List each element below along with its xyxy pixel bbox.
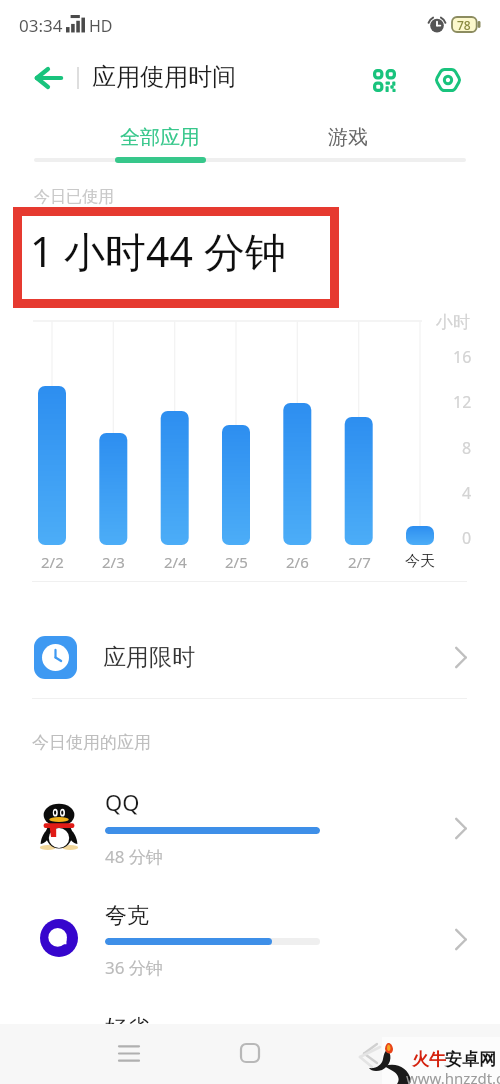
staticText: 2/6 — [286, 552, 309, 572]
staticText: 4 — [462, 482, 472, 500]
staticText: 今日使用的应用 — [32, 732, 151, 753]
button[interactable]: 返回 — [346, 1029, 394, 1077]
staticText: 2/5 — [225, 552, 248, 572]
staticText: 安卓网 — [445, 1049, 496, 1070]
staticText: 全部应用 — [120, 125, 200, 150]
button[interactable]: 游戏 — [248, 120, 448, 154]
button[interactable]: 应用限时 — [0, 599, 500, 715]
staticText: 12 — [453, 391, 472, 409]
staticText: 应用限时 — [103, 643, 195, 672]
button[interactable]: 主屏幕 — [226, 1029, 274, 1077]
staticText: 78 — [457, 17, 471, 33]
staticText: 2/3 — [102, 552, 125, 572]
staticText: 1 小时44 分钟 — [30, 223, 286, 279]
staticText: 2/2 — [41, 552, 64, 572]
staticText: QQ — [105, 787, 140, 817]
button[interactable]: 夸克 — [0, 884, 500, 996]
staticText: HD — [89, 15, 113, 37]
staticText: www.hnzzdt.com — [406, 1068, 500, 1084]
staticText: 好省 — [105, 1014, 149, 1042]
staticText: 小时 — [436, 312, 470, 333]
button[interactable]: 最近任务 — [105, 1029, 153, 1077]
staticText: 2/7 — [348, 552, 371, 572]
staticText: 0 — [462, 527, 472, 545]
staticText: 今天 — [405, 552, 435, 571]
button[interactable]: 扫一扫 — [363, 59, 405, 101]
staticText: 游戏 — [328, 125, 368, 150]
staticText: 火牛 — [412, 1049, 446, 1070]
staticText: 今日已使用 — [34, 187, 114, 207]
staticText: 16 — [453, 346, 472, 364]
staticText: 48 分钟 — [105, 845, 163, 868]
staticText: 36 分钟 — [105, 956, 163, 979]
staticText: 夸克 — [105, 902, 149, 930]
staticText: 应用使用时间 — [92, 62, 236, 92]
staticText: 03:34 — [19, 14, 63, 37]
staticText: 8 — [462, 437, 472, 455]
button[interactable]: QQ — [0, 773, 500, 885]
staticText: 2/4 — [164, 552, 187, 572]
button[interactable]: 好省 — [0, 995, 500, 1084]
button[interactable]: 设置 — [427, 59, 469, 101]
button[interactable]: 全部应用 — [48, 120, 272, 154]
button[interactable]: 返回 — [26, 56, 70, 100]
